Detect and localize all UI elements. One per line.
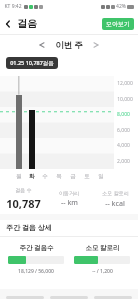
staticText: 소모 칼로리 [85, 243, 120, 252]
button[interactable]: 주간 걸음수 [8, 243, 64, 275]
staticText: 모아보기 [106, 20, 130, 28]
staticText: KT 9:42 [4, 3, 22, 10]
staticText: 토 [84, 173, 90, 180]
staticText: 18,129 / 56,000 [18, 268, 54, 275]
staticText: 월 [16, 173, 22, 180]
staticText: 수 [42, 173, 48, 180]
staticText: 4,000 [117, 142, 130, 149]
staticText: 42% [116, 3, 126, 10]
staticText: 금 [70, 173, 76, 180]
staticText: 12,000 [117, 80, 133, 87]
staticText: -- km [61, 198, 78, 208]
staticText: 2,000 [117, 158, 130, 165]
staticText: 10,787 [6, 196, 41, 211]
staticText: 목 [56, 173, 62, 180]
staticText: 6,000 [117, 127, 130, 134]
staticText: -- / 1,200 [92, 268, 113, 275]
staticText: 01.25 10,787걸음 [10, 59, 54, 67]
staticText: 주간 걸음 상세 [6, 223, 52, 233]
staticText: 이동거리 [59, 190, 79, 196]
staticText: 8,000 [117, 111, 130, 118]
staticText: 걸음 수 [15, 187, 32, 194]
button[interactable]: 모아보기 [102, 18, 134, 30]
staticText: 일 [98, 173, 104, 180]
staticText: 주간 걸음수 [19, 243, 54, 252]
button[interactable]: 소모 칼로리 [74, 243, 130, 275]
staticText: 소모 칼로리 [102, 190, 129, 197]
button[interactable]: Back [0, 16, 16, 32]
staticText: 화 [29, 173, 35, 180]
button[interactable]: Next week [89, 38, 103, 52]
button[interactable]: Previous week [35, 38, 49, 52]
staticText: -- kcal [105, 199, 125, 209]
staticText: 이번 주 [55, 39, 83, 51]
staticText: 걸음 [17, 17, 37, 30]
staticText: 10,000 [117, 96, 133, 103]
